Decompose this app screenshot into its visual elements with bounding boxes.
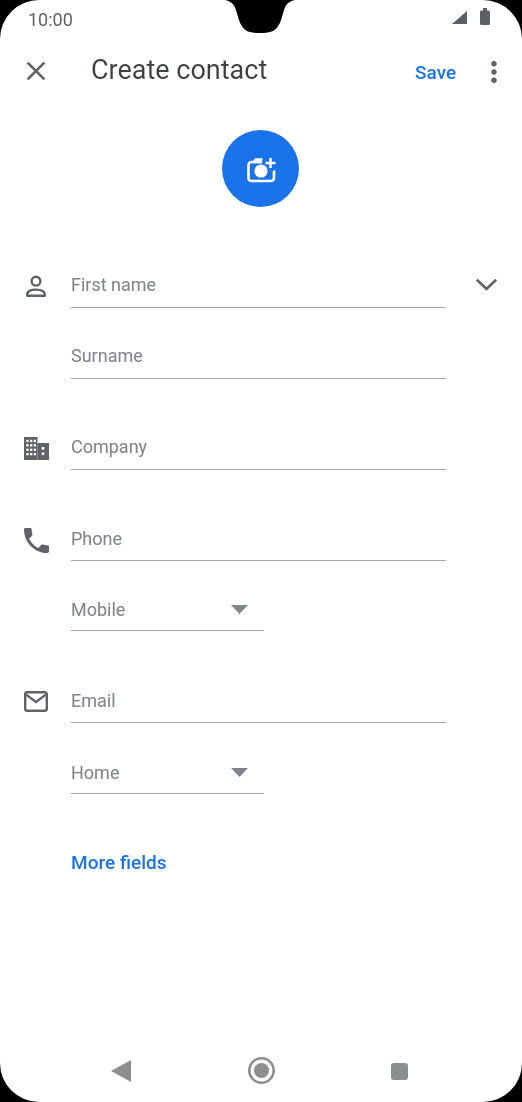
staticText: 10:00 xyxy=(28,9,73,30)
button[interactable] xyxy=(13,48,58,93)
staticText: Phone xyxy=(71,528,123,549)
button[interactable] xyxy=(101,1051,141,1091)
button[interactable]: Save xyxy=(403,49,469,94)
button[interactable] xyxy=(60,333,460,379)
button[interactable] xyxy=(60,750,270,796)
staticText: Mobile xyxy=(71,599,126,620)
staticText: Surname xyxy=(71,345,143,366)
staticText: Save xyxy=(415,61,457,83)
button[interactable] xyxy=(464,262,509,307)
staticText: Home xyxy=(71,762,120,783)
staticText: First name xyxy=(71,274,157,295)
button[interactable] xyxy=(474,49,514,94)
staticText: Email xyxy=(71,690,116,711)
button[interactable] xyxy=(222,130,299,207)
button[interactable] xyxy=(60,516,460,562)
staticText: Create contact xyxy=(91,54,268,86)
button[interactable] xyxy=(60,678,460,724)
button[interactable]: More fields xyxy=(71,842,167,882)
button[interactable] xyxy=(60,588,270,634)
button[interactable] xyxy=(241,1050,281,1090)
button[interactable] xyxy=(379,1051,419,1091)
staticText: More fields xyxy=(71,851,167,873)
button[interactable] xyxy=(60,424,460,470)
button[interactable] xyxy=(60,262,460,308)
staticText: Company xyxy=(71,436,148,457)
